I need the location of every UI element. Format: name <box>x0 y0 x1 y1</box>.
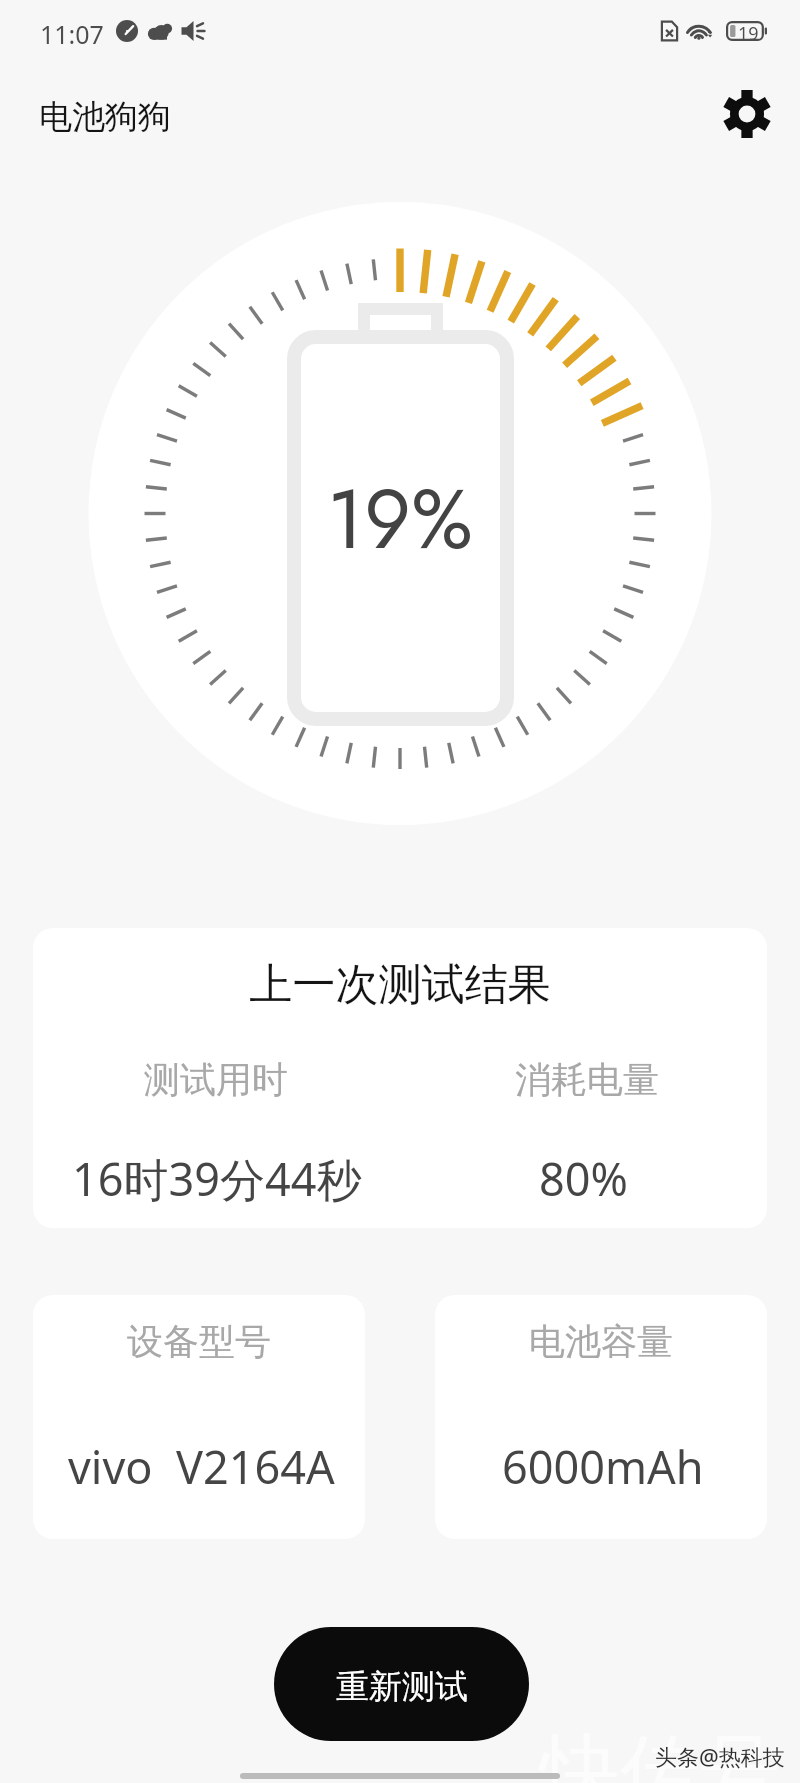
staticText: vivo V2164A <box>68 1436 335 1497</box>
staticText: 80% <box>539 1148 628 1209</box>
staticText: 电池狗狗 <box>39 96 171 138</box>
staticText: 消耗电量 <box>515 1057 659 1102</box>
staticText: 重新测试 <box>336 1666 468 1708</box>
staticText: 测试用时 <box>144 1057 288 1102</box>
staticText: 头条@热科技 <box>655 1741 785 1771</box>
staticText: 16时39分44秒 <box>72 1148 362 1209</box>
staticText: 19 <box>738 21 759 46</box>
staticText: 快传号 <box>540 1722 780 1783</box>
button[interactable]: Settings <box>718 85 775 142</box>
staticText: 6000mAh <box>502 1436 704 1497</box>
staticText: 上一次测试结果 <box>33 958 767 1012</box>
staticText: 电池容量 <box>529 1319 673 1364</box>
button[interactable]: 设备型号 <box>33 1295 365 1539</box>
staticText: 设备型号 <box>127 1319 271 1364</box>
staticText: 11:07 <box>40 17 104 51</box>
staticText: 19% <box>327 460 473 578</box>
button[interactable]: 重新测试 <box>274 1627 529 1741</box>
button[interactable]: 上一次测试结果 <box>33 928 767 1228</box>
button[interactable]: 电池容量 <box>435 1295 767 1539</box>
